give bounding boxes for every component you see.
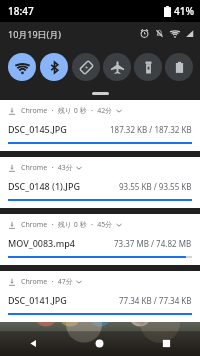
button[interactable]: Auto rotate: [72, 53, 100, 81]
button[interactable]: Wi-Fi: [8, 53, 36, 81]
staticText: Chrome ・ 43分: [21, 163, 73, 173]
staticText: 10月19日(月): [8, 28, 61, 40]
button[interactable]: Chrome ・ 残り 0 秒 ・ 42分: [0, 100, 200, 151]
staticText: 77.34 KB / 77.34 KB: [119, 295, 192, 306]
staticText: 18:47: [8, 4, 34, 18]
staticText: 73.37 MB / 74.82 MB: [114, 238, 192, 249]
staticText: DSC_0148 (1).JPG: [8, 180, 80, 192]
staticText: DSC_0141.JPG: [8, 294, 67, 306]
button[interactable]: Battery saver: [165, 53, 193, 81]
button[interactable]: Back: [0, 330, 66, 356]
staticText: Chrome ・ 47分: [21, 277, 73, 287]
button[interactable]: Chrome ・ 43分: [0, 157, 200, 208]
staticText: Chrome ・ 残り 0 秒 ・ 45分: [21, 220, 113, 230]
staticText: 187.32 KB / 187.32 KB: [110, 124, 192, 135]
button[interactable]: Recents: [133, 330, 200, 356]
staticText: MOV_0083.mp4: [8, 237, 75, 249]
button[interactable]: Chrome ・ 47分: [0, 271, 200, 322]
staticText: 41%: [174, 4, 194, 18]
staticText: Chrome ・ 残り 0 秒 ・ 42分: [21, 106, 113, 116]
button[interactable]: Home: [66, 330, 133, 356]
staticText: DSC_0145.JPG: [8, 123, 67, 135]
button[interactable]: Airplane mode: [103, 53, 131, 81]
button[interactable]: Flashlight: [134, 53, 162, 81]
button[interactable]: Chrome ・ 残り 0 秒 ・ 45分: [0, 214, 200, 265]
button[interactable]: Bluetooth: [40, 53, 68, 81]
staticText: 93.55 KB / 93.55 KB: [119, 181, 192, 192]
